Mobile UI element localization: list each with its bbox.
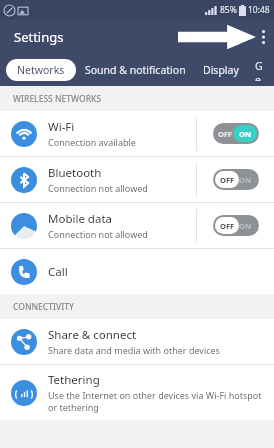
staticText: OFF	[220, 175, 235, 185]
staticText: 10:48	[248, 4, 270, 16]
staticText: General	[255, 59, 266, 81]
button[interactable]: ON	[197, 157, 274, 202]
button[interactable]: More options	[252, 20, 274, 54]
staticText: Call	[48, 264, 68, 280]
staticText: WIRELESS NETWORKS	[13, 93, 102, 105]
button[interactable]: Mobile data	[0, 203, 274, 248]
staticText: Sound & notification	[85, 63, 186, 77]
button[interactable]: Wi-Fi	[0, 111, 274, 156]
staticText: Networks	[17, 63, 65, 77]
staticText: Connection available	[48, 136, 136, 148]
button[interactable]: General	[247, 54, 274, 86]
staticText: ON	[239, 129, 252, 139]
staticText: 85%	[220, 4, 237, 16]
staticText: Use the Internet on other devices via Wi…	[48, 389, 264, 413]
staticText: Share & connect	[48, 327, 137, 343]
staticText: Connection not allowed	[48, 228, 148, 240]
button[interactable]: Networks	[6, 59, 76, 81]
staticText: Mobile data	[48, 211, 112, 227]
staticText: OFF	[218, 129, 233, 139]
button[interactable]: Display	[195, 58, 247, 82]
button[interactable]: Share & connect	[0, 319, 274, 364]
button[interactable]: Sound & notification	[76, 58, 195, 82]
button[interactable]: Tethering	[0, 365, 274, 420]
staticText: OFF	[220, 221, 235, 231]
staticText: ON	[239, 221, 252, 231]
staticText: Bluetooth	[48, 165, 102, 181]
staticText: ON	[239, 175, 252, 185]
staticText: Display	[203, 63, 239, 77]
button[interactable]: Bluetooth	[0, 157, 274, 202]
staticText: CONNECTIVITY	[13, 301, 74, 313]
staticText: Settings	[14, 28, 64, 46]
button[interactable]: ON	[197, 203, 274, 248]
button[interactable]: Call	[0, 249, 274, 294]
staticText: Tethering	[48, 372, 100, 388]
button[interactable]: OFF	[197, 111, 274, 156]
staticText: Wi-Fi	[48, 119, 75, 135]
staticText: Connection not allowed	[48, 182, 148, 194]
staticText: Share data and media with other devices	[48, 344, 220, 356]
